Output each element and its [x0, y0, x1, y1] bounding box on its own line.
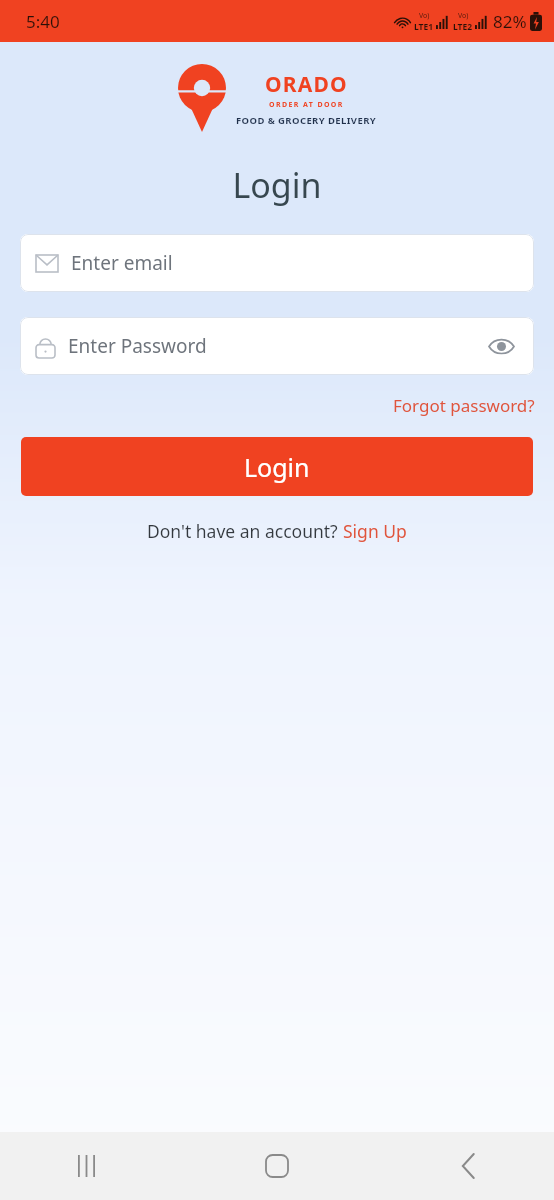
- button[interactable]: Recents: [58, 1138, 114, 1194]
- staticText: LTE1: [414, 21, 434, 33]
- staticText: ORDER AT DOOR: [269, 100, 344, 110]
- button[interactable]: Forgot password?: [391, 392, 537, 419]
- staticText: Vo): [458, 11, 469, 21]
- button[interactable]: Home: [249, 1138, 305, 1194]
- staticText: Vo): [419, 11, 430, 21]
- button[interactable]: Show password: [484, 329, 518, 363]
- staticText: Enter Password: [68, 333, 484, 359]
- staticText: LTE2: [453, 21, 473, 33]
- staticText: Don't have an account?: [147, 519, 343, 543]
- staticText: 5:40: [26, 10, 60, 33]
- staticText: Login: [244, 450, 310, 484]
- staticText: FOOD & GROCERY DELIVERY: [236, 114, 377, 127]
- button[interactable]: Back: [440, 1138, 496, 1194]
- staticText: Sign Up: [343, 519, 407, 543]
- staticText: 82%: [493, 10, 527, 33]
- button[interactable]: Enter email: [20, 234, 534, 292]
- staticText: Forgot password?: [393, 394, 535, 417]
- button[interactable]: Enter Password: [20, 317, 534, 375]
- staticText: ORADO: [265, 70, 348, 99]
- staticText: Enter email: [71, 250, 518, 276]
- staticText: Login: [0, 162, 554, 208]
- button[interactable]: Sign Up: [343, 519, 407, 543]
- button[interactable]: Login: [21, 437, 533, 496]
